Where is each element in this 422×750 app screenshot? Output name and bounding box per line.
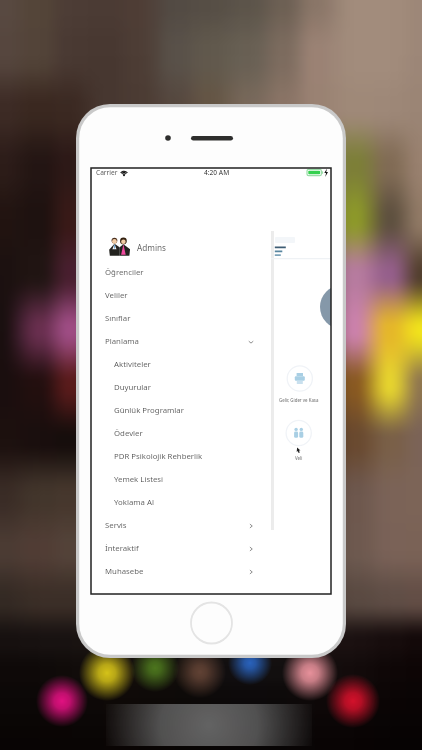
button[interactable]: Yoklama Al [91,491,331,514]
staticText: Veli [295,455,303,461]
button[interactable]: Muhasebe [91,560,331,583]
button[interactable]: Gelir, Gider ve Kasa [271,231,331,530]
button[interactable]: Ödevler [91,422,331,445]
staticText: Yemek Listesi [114,474,164,485]
button[interactable]: İnteraktif [91,537,331,560]
button[interactable]: Sınıflar [91,307,331,330]
staticText: Günlük Programlar [114,405,184,416]
button[interactable]: Duyurular [91,376,331,399]
button[interactable]: Planlama [91,330,331,353]
staticText: 4:20 AM [204,168,230,177]
staticText: Sınıflar [105,313,131,324]
staticText: İnteraktif [105,543,139,554]
staticText: Duyurular [114,382,151,393]
button[interactable]: Aktiviteler [91,353,331,376]
button[interactable]: Veliler [91,284,331,307]
button[interactable]: PDR Psikolojik Rehberlik [91,445,331,468]
staticText: Veliler [105,290,128,301]
button[interactable]: Öğrenciler [91,261,331,284]
staticText: Carrier [96,168,118,177]
staticText: Planlama [105,336,139,347]
staticText: Ödevler [114,428,143,439]
staticText: Servis [105,520,127,531]
staticText: PDR Psikolojik Rehberlik [114,451,203,462]
staticText: Yoklama Al [114,497,154,508]
staticText: Aktiviteler [114,359,151,370]
button[interactable]: Yemek Listesi [91,468,331,491]
staticText: Öğrenciler [105,267,144,278]
staticText: Admins [137,242,167,253]
button[interactable]: Admins [91,233,331,261]
staticText: Muhasebe [105,566,144,577]
staticText: Gelir, Gider ve Kasa [279,397,319,403]
button[interactable]: Servis [91,514,331,537]
button[interactable]: Günlük Programlar [91,399,331,422]
